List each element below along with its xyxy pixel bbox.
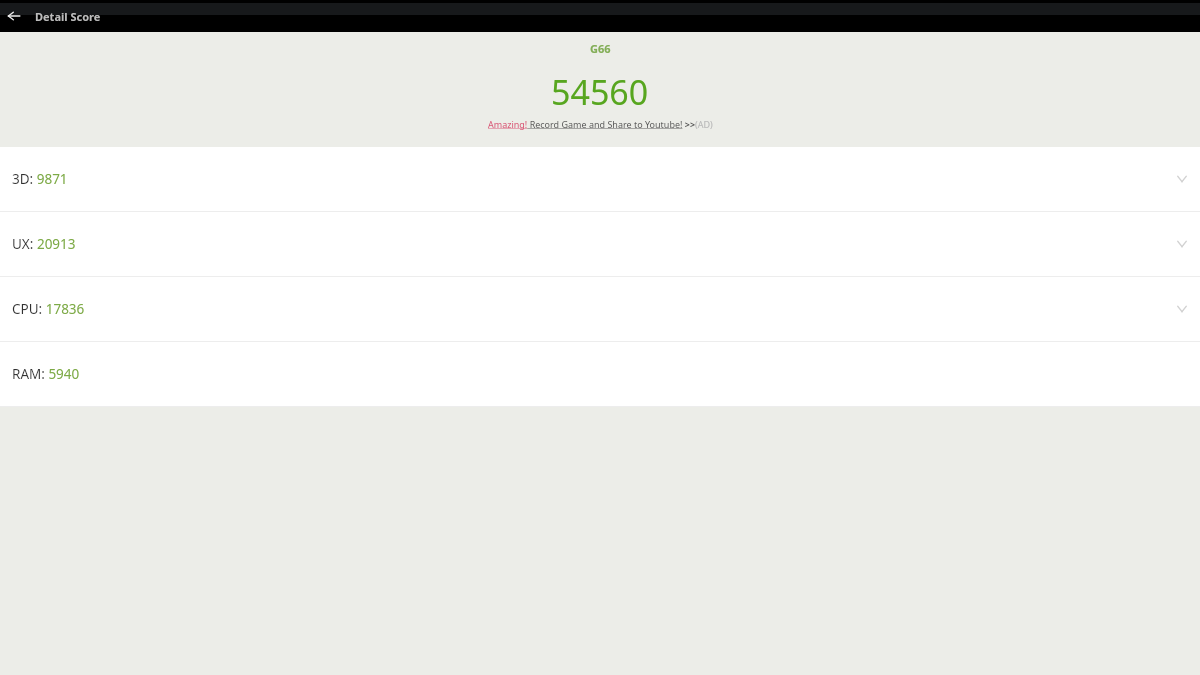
staticText: Amazing! Record Game and Share to Youtub…	[488, 118, 713, 130]
button[interactable]: RAM: 5940	[0, 342, 1200, 406]
button[interactable]: 3D: 9871	[0, 147, 1200, 211]
button[interactable]: CPU: 17836	[0, 277, 1200, 341]
button[interactable]: Back	[0, 2, 28, 30]
staticText: G66	[590, 41, 611, 56]
staticText: CPU: 17836	[12, 300, 85, 318]
button[interactable]: Amazing! Record Game and Share to Youtub…	[488, 118, 713, 130]
staticText: RAM: 5940	[12, 365, 80, 383]
staticText: Detail Score	[35, 9, 101, 24]
staticText: 3D: 9871	[12, 170, 68, 188]
button[interactable]: UX: 20913	[0, 212, 1200, 276]
staticText: UX: 20913	[12, 235, 76, 253]
staticText: 54560	[551, 69, 649, 115]
